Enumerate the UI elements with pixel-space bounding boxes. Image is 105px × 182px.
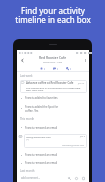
staticText: Restaurant · Cafe xyxy=(43,60,63,63)
staticText: Jun 14 xyxy=(78,82,85,85)
staticText: hello@restaurant.com xyxy=(26,135,51,138)
staticText: Red Rooster Cafe xyxy=(39,55,67,59)
staticText: Advance coffee at Red Rooster Cafe xyxy=(26,81,74,85)
button[interactable]: Advance coffee at Red Rooster Cafe xyxy=(20,80,87,93)
staticText: Find your activity timeline in each box xyxy=(15,5,91,26)
staticText: Last month xyxy=(20,169,35,173)
staticText: Francis added the Spot for coffee. Yes xyxy=(25,105,59,112)
staticText: This month xyxy=(20,117,35,121)
staticText: Last week xyxy=(20,74,33,78)
staticText: Francis removed an email xyxy=(25,126,58,130)
staticText: The transaction is a transaction for cof… xyxy=(26,86,85,92)
button[interactable]: Francis added to favorites xyxy=(17,94,89,102)
button[interactable]: Attach xyxy=(73,175,80,182)
staticText: Jun 8 xyxy=(80,135,85,138)
button[interactable]: Document xyxy=(80,175,87,182)
staticText: (1) xyxy=(26,138,29,141)
staticText: Francis added to favorites xyxy=(25,96,58,100)
button[interactable]: Francis removed an email xyxy=(17,151,89,159)
button[interactable]: Back xyxy=(18,56,26,64)
button[interactable]: Call xyxy=(65,66,73,71)
button[interactable]: Call xyxy=(66,175,73,182)
staticText: manager@gmail.com xyxy=(62,144,85,147)
button[interactable]: Save xyxy=(39,66,47,71)
button[interactable]: Message xyxy=(52,66,60,71)
button[interactable]: More options xyxy=(81,56,89,64)
staticText: Francis removed an email xyxy=(25,161,58,165)
button[interactable]: Francis removed an email xyxy=(17,159,89,167)
button[interactable]: hello@restaurant.com xyxy=(24,134,87,148)
button[interactable]: Francis removed an email xyxy=(17,123,89,132)
staticText: Francis removed an email xyxy=(25,153,58,157)
staticText: add comment... xyxy=(21,176,41,180)
button[interactable]: Francis added the Spot for coffee. Yes xyxy=(17,102,89,115)
